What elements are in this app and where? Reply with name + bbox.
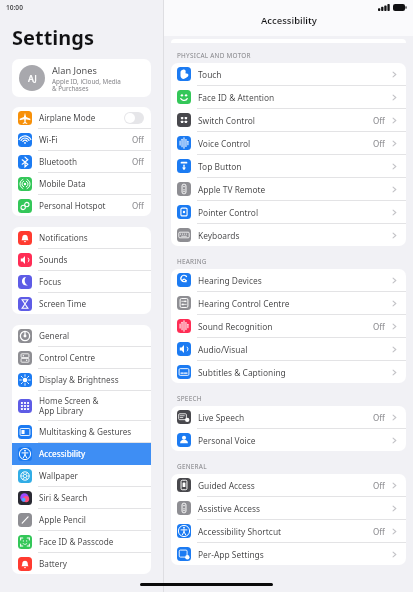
staticText: Hearing Devices xyxy=(198,275,390,286)
staticText: Apple Pencil xyxy=(39,514,144,525)
staticText: Alan Jones xyxy=(52,64,97,77)
button[interactable]: Top Button xyxy=(171,155,406,178)
staticText: Keyboards xyxy=(198,230,390,241)
staticText: Battery xyxy=(39,558,144,569)
button[interactable]: Per-App Settings xyxy=(171,543,406,565)
staticText: Screen Time xyxy=(39,298,144,309)
staticText: Off xyxy=(132,200,144,211)
staticText: Multitasking & Gestures xyxy=(39,426,144,437)
button[interactable]: Mobile Data xyxy=(12,173,151,195)
staticText: Apple ID, iCloud, Media & Purchases xyxy=(52,77,121,93)
button[interactable]: Touch xyxy=(171,63,406,86)
staticText: Home Screen & App Library xyxy=(39,395,144,416)
staticText: Control Centre xyxy=(39,352,144,363)
staticText: Guided Access xyxy=(198,480,373,491)
staticText: Subtitles & Captioning xyxy=(198,367,390,378)
staticText: Off xyxy=(373,412,385,423)
button[interactable]: Live Speech xyxy=(171,406,406,429)
staticText: PHYSICAL AND MOTOR xyxy=(177,51,251,60)
staticText: Wi-Fi xyxy=(39,134,132,145)
button[interactable]: Guided Access xyxy=(171,474,406,497)
staticText: Off xyxy=(373,115,385,126)
button[interactable]: Wi-Fi xyxy=(12,129,151,151)
staticText: Top Button xyxy=(198,161,390,172)
staticText: Wallpaper xyxy=(39,470,144,481)
staticText: Sounds xyxy=(39,254,144,265)
button[interactable]: Sounds xyxy=(12,249,151,271)
staticText: Off xyxy=(132,156,144,167)
staticText: Sound Recognition xyxy=(198,321,373,332)
staticText: Off xyxy=(373,480,385,491)
button[interactable]: Accessibility Shortcut xyxy=(171,520,406,543)
button[interactable]: Hearing Devices xyxy=(171,269,406,292)
staticText: Pointer Control xyxy=(198,207,390,218)
staticText: SPEECH xyxy=(177,394,202,403)
button[interactable]: General xyxy=(12,325,151,347)
staticText: Off xyxy=(373,138,385,149)
staticText: Siri & Search xyxy=(39,492,144,503)
staticText: Personal Voice xyxy=(198,435,390,446)
staticText: Personal Hotspot xyxy=(39,200,132,211)
staticText: Off xyxy=(373,321,385,332)
staticText: Touch xyxy=(198,69,390,80)
button[interactable]: Accessibility xyxy=(12,443,151,465)
button[interactable]: Subtitles & Captioning xyxy=(171,361,406,383)
button[interactable]: Control Centre xyxy=(12,347,151,369)
staticText: Accessibility xyxy=(39,448,144,459)
button[interactable]: Voice Control xyxy=(171,132,406,155)
staticText: Settings xyxy=(12,24,94,51)
button[interactable]: Hearing Control Centre xyxy=(171,292,406,315)
staticText: Audio/Visual xyxy=(198,344,390,355)
button[interactable]: Airplane Mode xyxy=(12,107,151,129)
button[interactable]: Bluetooth xyxy=(12,151,151,173)
staticText: Display & Brightness xyxy=(39,374,144,385)
button[interactable]: Audio/Visual xyxy=(171,338,406,361)
staticText: Notifications xyxy=(39,232,144,243)
staticText: Face ID & Passcode xyxy=(39,536,144,547)
button[interactable]: Sound Recognition xyxy=(171,315,406,338)
button[interactable]: Home Screen & App Library xyxy=(12,391,151,421)
button[interactable]: Focus xyxy=(12,271,151,293)
staticText: GENERAL xyxy=(177,462,207,471)
button[interactable]: Battery xyxy=(12,553,151,574)
staticText: Mobile Data xyxy=(39,178,144,189)
button[interactable]: Face ID & Passcode xyxy=(12,531,151,553)
staticText: 10:00 xyxy=(6,3,23,12)
other: Home indicator xyxy=(140,583,273,586)
button[interactable]: AJ xyxy=(12,59,151,97)
button[interactable]: Switch Control xyxy=(171,109,406,132)
staticText: Voice Control xyxy=(198,138,373,149)
button[interactable]: Display & Brightness xyxy=(12,369,151,391)
button[interactable]: Keyboards xyxy=(171,224,406,246)
button[interactable]: Notifications xyxy=(12,227,151,249)
button[interactable]: Apple TV Remote xyxy=(171,178,406,201)
button[interactable]: Siri & Search xyxy=(12,487,151,509)
staticText: Airplane Mode xyxy=(39,112,124,123)
staticText: Off xyxy=(132,134,144,145)
staticText: Accessibility Shortcut xyxy=(198,526,373,537)
button[interactable]: Multitasking & Gestures xyxy=(12,421,151,443)
staticText: Bluetooth xyxy=(39,156,132,167)
staticText: Assistive Access xyxy=(198,503,390,514)
button[interactable]: Assistive Access xyxy=(171,497,406,520)
staticText: Live Speech xyxy=(198,412,373,423)
button[interactable]: Apple Pencil xyxy=(12,509,151,531)
staticText: AJ xyxy=(28,72,37,84)
staticText: Accessibility xyxy=(261,14,317,27)
staticText: Hearing Control Centre xyxy=(198,298,390,309)
staticText: Focus xyxy=(39,276,144,287)
staticText: Face ID & Attention xyxy=(198,92,390,103)
button[interactable]: Personal Hotspot xyxy=(12,195,151,216)
button[interactable] xyxy=(124,112,144,124)
button[interactable]: Face ID & Attention xyxy=(171,86,406,109)
button[interactable]: Wallpaper xyxy=(12,465,151,487)
button[interactable]: Pointer Control xyxy=(171,201,406,224)
staticText: Off xyxy=(373,526,385,537)
staticText: Switch Control xyxy=(198,115,373,126)
button[interactable]: Personal Voice xyxy=(171,429,406,451)
staticText: Per-App Settings xyxy=(198,549,390,560)
staticText: Apple TV Remote xyxy=(198,184,390,195)
staticText: HEARING xyxy=(177,257,207,266)
staticText: General xyxy=(39,330,144,341)
button[interactable]: Screen Time xyxy=(12,293,151,314)
